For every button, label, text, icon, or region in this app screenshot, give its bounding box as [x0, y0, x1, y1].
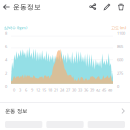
- staticText: 0: [5, 84, 7, 89]
- button[interactable]: Delete: [114, 0, 128, 14]
- staticText: 고도 (m): [111, 25, 126, 30]
- staticText: 27: [66, 87, 70, 93]
- staticText: 6: [25, 87, 27, 93]
- button[interactable]: Share: [86, 0, 100, 14]
- staticText: 39: [90, 87, 94, 93]
- staticText: 865: [117, 44, 123, 49]
- staticText: 18: [48, 87, 52, 93]
- staticText: 3: [19, 87, 21, 93]
- staticText: 4: [5, 57, 7, 62]
- staticText: 24: [60, 87, 64, 93]
- staticText: 1100: [117, 30, 125, 36]
- staticText: 36: [84, 87, 88, 93]
- staticText: 9: [31, 87, 33, 93]
- staticText: 심박수 (bpm): [4, 25, 27, 30]
- staticText: 0: [13, 87, 15, 93]
- staticText: 45: [102, 87, 106, 93]
- staticText: 6: [5, 44, 7, 49]
- staticText: 33: [78, 87, 82, 93]
- staticText: 운동정보: [13, 3, 41, 11]
- button[interactable]: Back: [0, 0, 13, 14]
- staticText: 운동 정보: [5, 108, 27, 114]
- staticText: 48: [108, 87, 112, 93]
- staticText: 0: [117, 84, 119, 89]
- button[interactable]: Edit: [100, 0, 114, 14]
- staticText: 12: [36, 87, 40, 93]
- staticText: 600: [117, 57, 123, 62]
- staticText: 30: [72, 87, 76, 93]
- staticText: 42: [96, 87, 100, 93]
- staticText: 8: [5, 30, 7, 36]
- staticText: 21: [54, 87, 58, 93]
- staticText: 15: [42, 87, 46, 93]
- staticText: 2: [5, 70, 7, 76]
- staticText: 275: [117, 70, 123, 76]
- button[interactable]: 운동 정보: [0, 103, 130, 119]
